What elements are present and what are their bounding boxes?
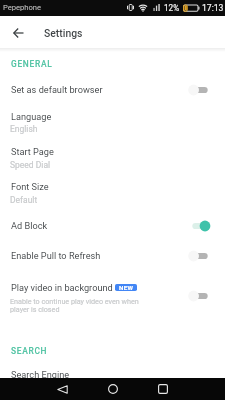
staticText: Language: [11, 111, 52, 122]
staticText: Play video in background: [11, 282, 113, 293]
staticText: 12%: [164, 3, 180, 13]
button[interactable]: Ad Block: [0, 210, 225, 238]
button[interactable]: Home: [96, 378, 130, 400]
button[interactable]: Enable Pull to Refresh: [0, 240, 225, 268]
button[interactable]: Off: [184, 287, 214, 305]
staticText: 17:13: [202, 3, 224, 13]
staticText: SEARCH: [11, 346, 48, 356]
button[interactable]: Back: [45, 378, 79, 400]
button[interactable]: Off: [184, 247, 214, 265]
staticText: player is closed: [10, 305, 60, 313]
button[interactable]: Off: [184, 81, 214, 99]
staticText: English: [10, 124, 38, 134]
button[interactable]: Play video in background: [0, 272, 225, 320]
staticText: Default: [10, 195, 38, 205]
staticText: Start Page: [11, 146, 54, 157]
staticText: Search Engine: [11, 369, 70, 380]
button[interactable]: Start Page: [0, 137, 225, 172]
staticText: NEW: [119, 284, 134, 291]
staticText: Set as default browser: [11, 84, 103, 95]
staticText: Font Size: [11, 181, 49, 192]
button[interactable]: Back: [8, 22, 29, 43]
staticText: Enable to continue play video even when: [10, 297, 139, 305]
button[interactable]: On: [184, 217, 214, 235]
staticText: Pepephone: [3, 3, 42, 12]
staticText: Speed Dial: [10, 160, 51, 170]
staticText: Ad Block: [11, 220, 48, 231]
button[interactable]: Language: [0, 102, 225, 137]
button[interactable]: Set as default browser: [0, 74, 225, 102]
staticText: GENERAL: [11, 59, 53, 69]
button[interactable]: Font Size: [0, 172, 225, 207]
staticText: Enable Pull to Refresh: [11, 250, 101, 261]
staticText: Settings: [44, 27, 83, 39]
button[interactable]: Recents: [146, 378, 180, 400]
button[interactable]: Search Engine: [0, 362, 225, 386]
